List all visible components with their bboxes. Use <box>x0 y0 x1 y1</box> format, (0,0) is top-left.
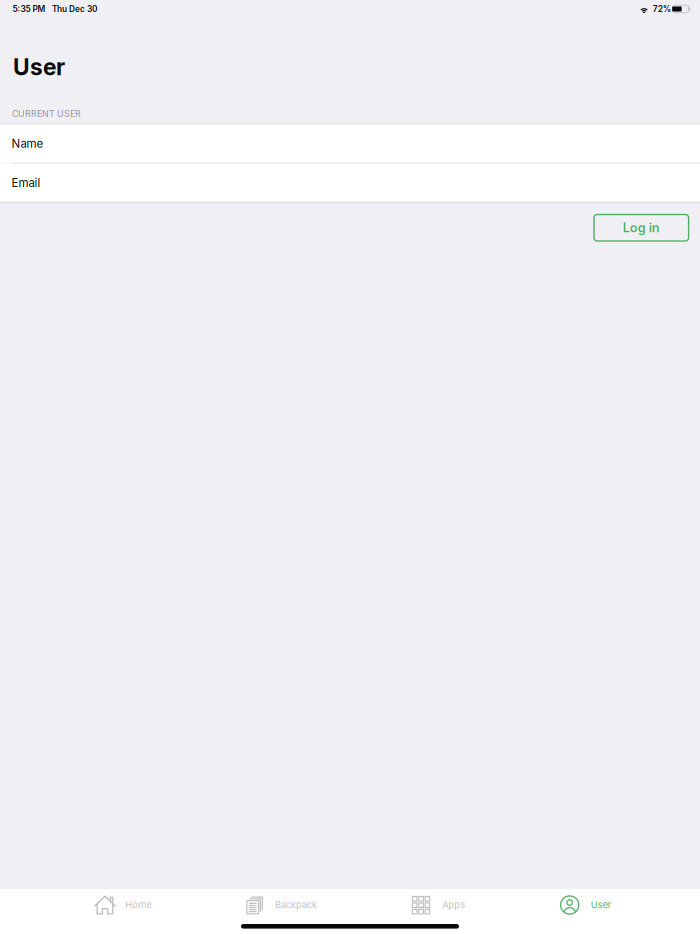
staticText: User <box>591 899 611 910</box>
staticText: Name <box>11 137 43 150</box>
staticText: Email <box>11 176 40 190</box>
button[interactable]: Backpack <box>246 886 317 924</box>
button[interactable]: Apps <box>412 886 465 924</box>
button[interactable]: Home <box>93 886 151 924</box>
staticText: CURRENT USER <box>12 108 81 119</box>
button[interactable]: Email <box>0 164 700 202</box>
staticText: User <box>13 53 65 81</box>
staticText: Log in <box>623 220 660 235</box>
button[interactable]: Name <box>0 124 700 163</box>
staticText: Thu Dec 30 <box>52 4 97 14</box>
button[interactable]: User <box>560 886 611 924</box>
staticText: Backpack <box>275 899 317 910</box>
staticText: 5:35 PM <box>13 4 46 14</box>
staticText: 72% <box>653 4 671 14</box>
button[interactable]: Log in <box>594 214 689 241</box>
staticText: Home <box>125 899 151 910</box>
staticText: Apps <box>442 899 465 910</box>
